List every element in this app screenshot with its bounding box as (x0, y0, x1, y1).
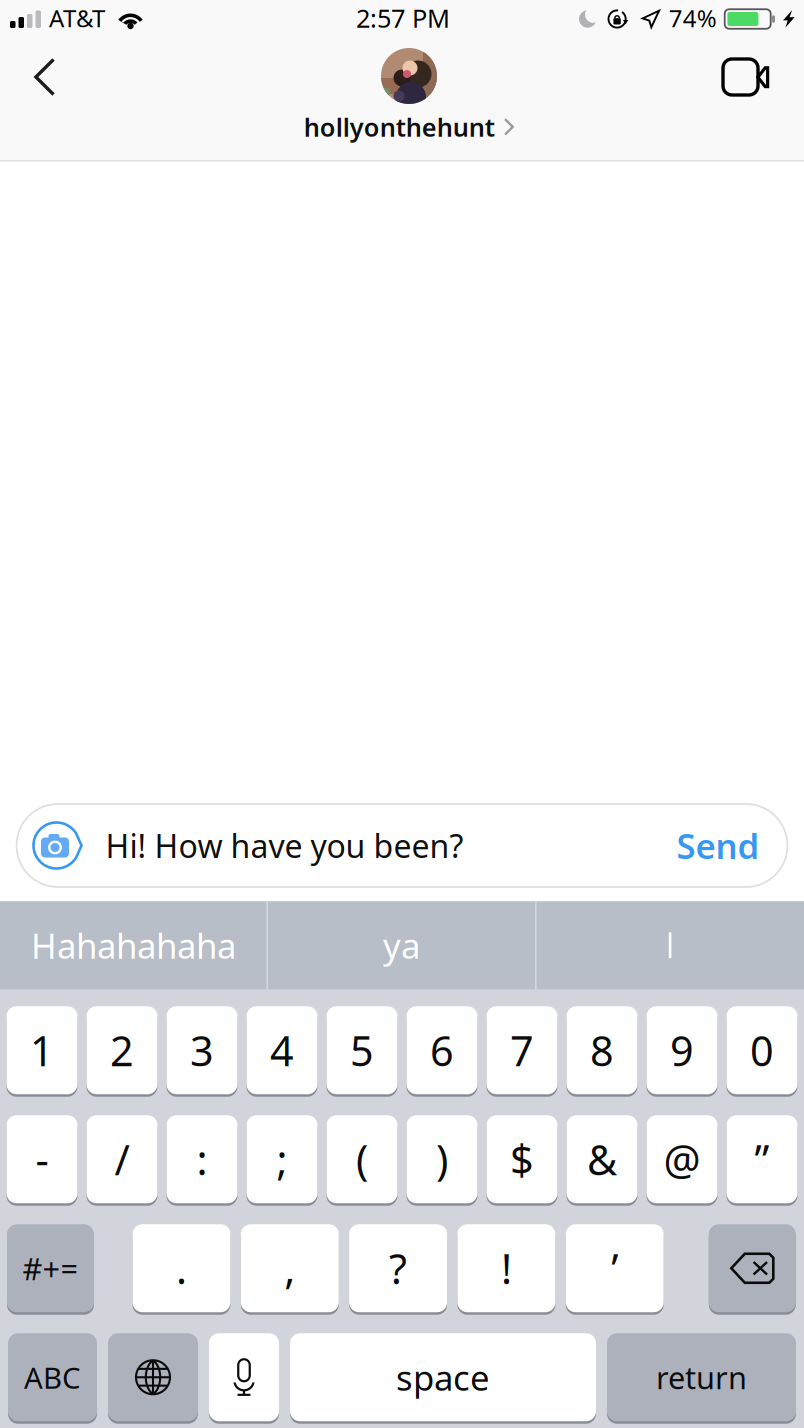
button[interactable]: $ (486, 1114, 557, 1205)
staticText: $ (510, 1132, 534, 1187)
button[interactable]: 7 (486, 1005, 557, 1096)
staticText: & (587, 1132, 617, 1187)
staticText: 7 (510, 1023, 534, 1078)
button[interactable]: @ (646, 1114, 717, 1205)
staticText: 4 (270, 1023, 294, 1078)
staticText: - (35, 1132, 48, 1187)
staticText: return (656, 1357, 747, 1398)
button[interactable]: 3 (166, 1005, 237, 1096)
staticText: / (114, 1132, 129, 1187)
staticText: 2 (110, 1023, 134, 1078)
staticText: hollyonthehunt (304, 110, 495, 144)
button[interactable]: , (241, 1223, 339, 1314)
staticText: 5 (350, 1023, 374, 1078)
staticText: , (284, 1241, 295, 1296)
staticText: ? (389, 1241, 407, 1296)
staticText: 8 (590, 1023, 614, 1078)
staticText: 1 (30, 1023, 54, 1078)
button[interactable]: 4 (246, 1005, 317, 1096)
button[interactable]: Send (676, 801, 787, 889)
staticText: ’ (611, 1241, 618, 1296)
staticText: 3 (190, 1023, 214, 1078)
button[interactable]: #+= (7, 1223, 94, 1314)
button[interactable]: space (290, 1332, 596, 1423)
button[interactable]: hollyonthehunt (232, 38, 572, 160)
button[interactable]: ! (457, 1223, 555, 1314)
button[interactable]: 6 (406, 1005, 477, 1096)
button[interactable]: 2 (86, 1005, 157, 1096)
staticText: Hahahahaha (31, 922, 236, 968)
button[interactable]: Camera (16, 804, 83, 886)
button[interactable]: 0 (726, 1005, 797, 1096)
button[interactable]: ) (406, 1114, 477, 1205)
staticText: AT&T (49, 2, 105, 34)
staticText: #+= (22, 1248, 78, 1289)
button[interactable]: Dictate (209, 1332, 279, 1423)
staticText: Send (676, 822, 759, 868)
button[interactable]: Delete (709, 1223, 796, 1314)
staticText: ; (276, 1132, 287, 1187)
button[interactable]: 1 (6, 1005, 77, 1096)
staticText: . (176, 1241, 187, 1296)
button[interactable]: Hahahahaha (0, 901, 266, 989)
staticText: @ (663, 1132, 700, 1187)
button[interactable]: Back (0, 38, 90, 116)
staticText: ! (501, 1241, 512, 1296)
staticText: 0 (750, 1023, 774, 1078)
button[interactable]: 8 (566, 1005, 637, 1096)
button[interactable]: ? (349, 1223, 447, 1314)
staticText: 74% (669, 2, 717, 34)
button[interactable]: ; (246, 1114, 317, 1205)
staticText: ABC (24, 1358, 81, 1397)
button[interactable]: return (607, 1332, 796, 1423)
staticText: ) (436, 1132, 448, 1187)
button[interactable]: ( (326, 1114, 397, 1205)
button[interactable]: Video call (692, 38, 804, 116)
button[interactable]: ya (268, 901, 535, 989)
button[interactable]: ’ (566, 1223, 664, 1314)
staticText: 9 (670, 1023, 694, 1078)
button[interactable]: ” (726, 1114, 797, 1205)
button[interactable]: & (566, 1114, 637, 1205)
button[interactable]: Next keyboard (108, 1332, 198, 1423)
staticText: ” (754, 1132, 769, 1187)
button[interactable]: . (132, 1223, 230, 1314)
button[interactable]: 5 (326, 1005, 397, 1096)
button[interactable]: 9 (646, 1005, 717, 1096)
button[interactable]: - (6, 1114, 77, 1205)
staticText: 2:57 PM (356, 1, 450, 35)
staticText: Hi! How have you been? (105, 824, 463, 867)
staticText: ya (383, 922, 420, 968)
button[interactable]: I (537, 901, 804, 989)
staticText: : (196, 1132, 207, 1187)
button[interactable]: ABC (8, 1332, 97, 1423)
button[interactable]: / (86, 1114, 157, 1205)
button[interactable]: : (166, 1114, 237, 1205)
staticText: space (396, 1354, 490, 1400)
staticText: 6 (430, 1023, 454, 1078)
staticText: ( (356, 1132, 368, 1187)
